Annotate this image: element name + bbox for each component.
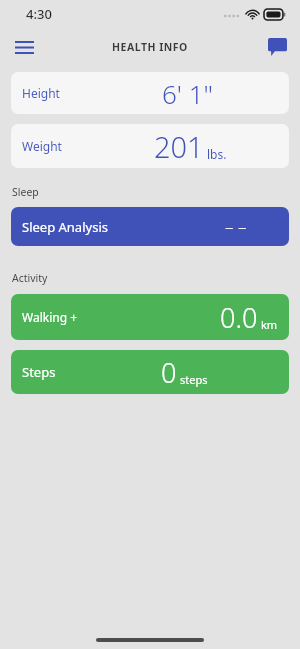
button[interactable]: Walking + Running Distance (11, 294, 289, 340)
staticText: 0.0 (220, 299, 258, 336)
staticText: Activity (12, 271, 48, 285)
button[interactable]: Height (11, 72, 289, 114)
staticText: km (261, 317, 278, 332)
staticText: HEALTH INFO (112, 40, 188, 54)
button[interactable]: Steps (11, 350, 289, 394)
button[interactable]: Menu (6, 29, 42, 65)
button[interactable]: Messages (260, 30, 294, 64)
staticText: Sleep (12, 185, 39, 199)
staticText: 4:30 (26, 5, 52, 23)
button[interactable]: Weight (11, 124, 289, 168)
staticText: – – (225, 215, 247, 238)
staticText: 6' 1" (162, 76, 214, 111)
staticText: Walking + Running Distance (22, 309, 121, 325)
staticText: lbs. (207, 146, 227, 162)
staticText: steps (180, 372, 208, 387)
staticText: Sleep Analysis (22, 218, 108, 236)
staticText: 201 (154, 127, 204, 166)
staticText: Height (22, 85, 60, 101)
staticText: Weight (22, 138, 62, 154)
staticText: 0 (161, 354, 177, 391)
button[interactable]: Sleep Analysis (11, 207, 289, 246)
staticText: Steps (22, 363, 56, 381)
